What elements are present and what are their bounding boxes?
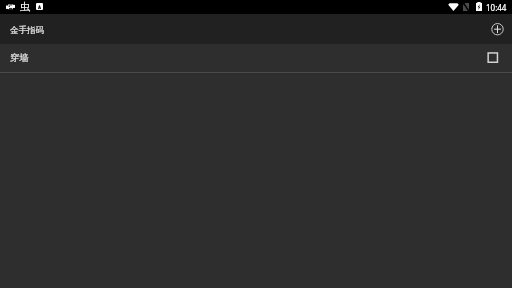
button[interactable]: Toggle 穿墙: [482, 47, 504, 69]
staticText: 10:44: [486, 2, 507, 13]
button[interactable]: 穿墙: [0, 44, 512, 72]
staticText: 穿墙: [10, 52, 29, 64]
button[interactable]: Add: [487, 18, 508, 41]
staticText: 金手指码: [10, 25, 44, 36]
staticText: 虫: [20, 0, 30, 13]
